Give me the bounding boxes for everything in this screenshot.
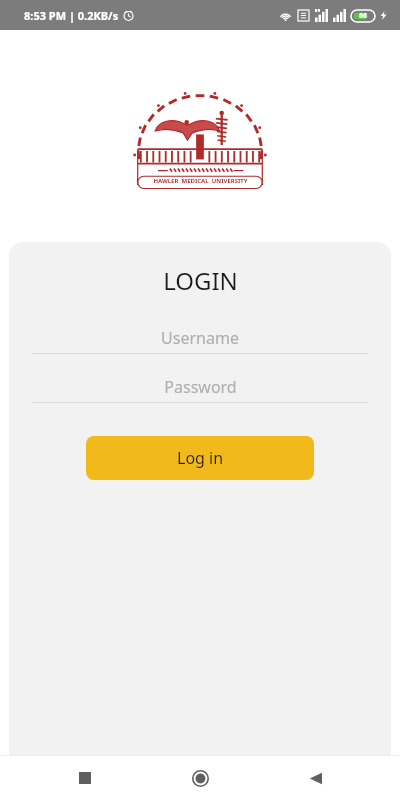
button[interactable]: Recent apps [65,758,105,798]
button[interactable]: Home [180,758,220,798]
staticText: Log in [177,447,224,469]
button[interactable]: Log in [86,436,314,480]
staticText: 66 [359,11,368,21]
staticText: HAWLER MEDICAL UNIVERSITY [153,177,248,185]
staticText: Password [164,376,237,398]
button[interactable]: Password [31,372,369,403]
button[interactable]: Back [295,758,335,798]
button[interactable]: Username [31,323,369,354]
staticText: 8:53 PM | 0.2KB/s [24,8,119,23]
staticText: Username [161,327,239,349]
staticText: LOGIN [163,264,238,297]
